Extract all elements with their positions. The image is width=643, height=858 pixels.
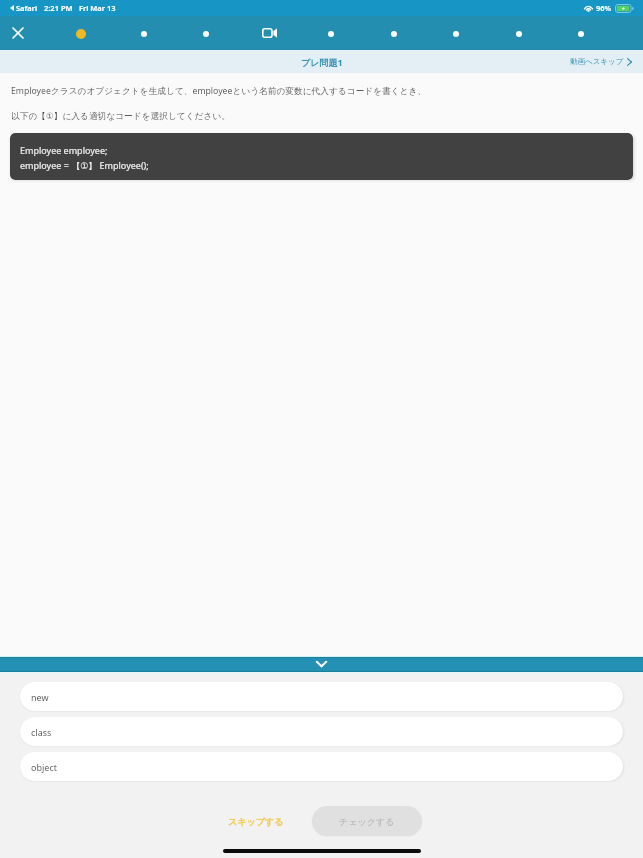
button[interactable]: Step 4: [256, 21, 282, 47]
button[interactable]: Step 1: [68, 21, 94, 47]
button[interactable]: Close: [6, 21, 30, 45]
button[interactable]: Step 5: [318, 21, 344, 47]
button[interactable]: Step 9: [568, 21, 594, 47]
button[interactable]: new: [20, 682, 623, 711]
staticText: Safari: [16, 3, 38, 13]
staticText: object: [31, 761, 57, 773]
staticText: スキップする: [228, 816, 284, 827]
staticText: 96%: [596, 3, 612, 13]
staticText: 2:21 PM: [44, 3, 73, 13]
staticText: Employee employee;: [20, 144, 108, 156]
button[interactable]: 動画へスキップ: [570, 57, 643, 66]
staticText: new: [31, 691, 49, 703]
staticText: 以下の【①】に入る適切なコードを選択してください。: [11, 111, 230, 122]
button[interactable]: スキップする: [222, 811, 290, 832]
staticText: 動画へスキップ: [570, 57, 624, 66]
button[interactable]: Step 7: [443, 21, 469, 47]
button[interactable]: Step 6: [381, 21, 407, 47]
staticText: Employeeクラスのオブジェクトを生成して、employeeという名前の変数…: [11, 85, 427, 97]
button[interactable]: Step 2: [131, 21, 157, 47]
button[interactable]: Step 3: [193, 21, 219, 47]
button[interactable]: object: [20, 752, 623, 781]
staticText: Fri Mar 13: [79, 3, 116, 13]
staticText: チェックする: [339, 816, 395, 827]
button[interactable]: Step 8: [506, 21, 532, 47]
staticText: employee = 【①】 Employee();: [20, 159, 149, 171]
button[interactable]: Collapse answer panel: [0, 656, 643, 673]
staticText: class: [31, 726, 52, 738]
button[interactable]: チェックする: [312, 806, 422, 836]
staticText: プレ問題1: [301, 56, 343, 68]
button[interactable]: class: [20, 717, 623, 746]
